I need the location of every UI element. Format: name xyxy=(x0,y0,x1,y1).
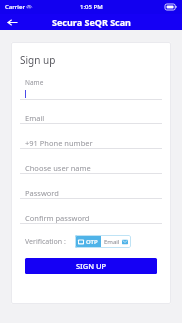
staticText: SIGN UP xyxy=(76,261,107,271)
button[interactable]: Choose user name xyxy=(20,162,162,174)
staticText: Sign up xyxy=(20,53,56,67)
staticText: +91 Phone number xyxy=(25,138,93,148)
button[interactable]: Confirm password xyxy=(20,212,162,224)
staticText: Password xyxy=(25,188,59,198)
staticText: Confirm password xyxy=(25,213,90,223)
button[interactable]: Password xyxy=(20,187,162,199)
staticText: Secura SeQR Scan xyxy=(52,16,131,28)
button[interactable]: +91 Phone number xyxy=(20,137,162,149)
staticText: Carrier xyxy=(5,3,25,11)
staticText: 1:05 PM xyxy=(80,3,103,11)
button[interactable]: Email xyxy=(20,112,162,124)
button[interactable]: Name xyxy=(20,78,162,100)
button[interactable]: Back xyxy=(4,14,20,30)
staticText: Verification : xyxy=(25,237,66,247)
button[interactable]: OTP xyxy=(75,235,101,248)
button[interactable]: Email xyxy=(101,235,131,248)
button[interactable]: SIGN UP xyxy=(25,258,157,274)
staticText: Email xyxy=(104,238,120,246)
staticText: OTP xyxy=(86,238,98,246)
staticText: Name xyxy=(25,78,44,87)
staticText: Choose user name xyxy=(25,163,91,173)
staticText: Email xyxy=(25,113,45,123)
